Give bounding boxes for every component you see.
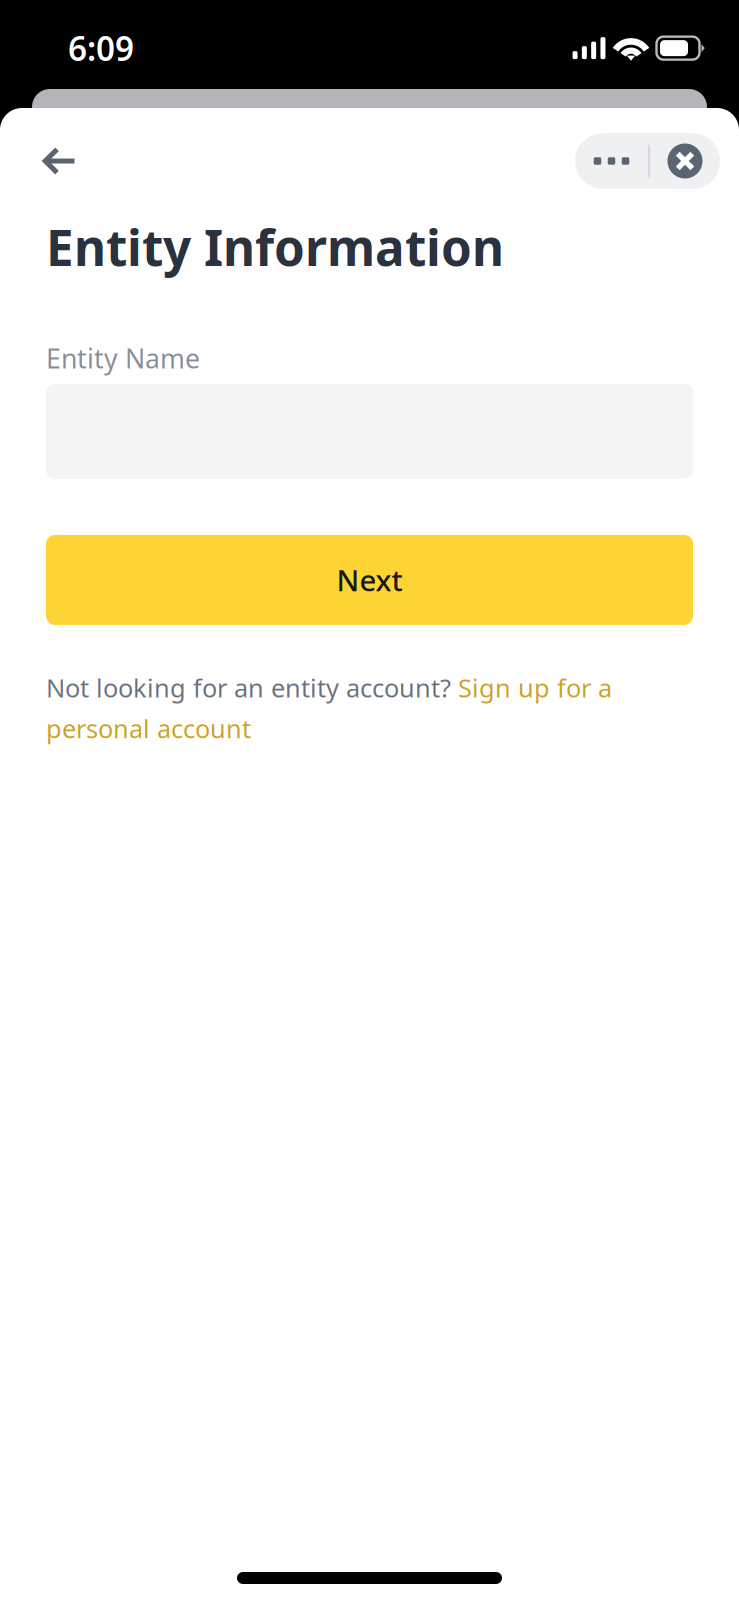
button[interactable]: Next [46, 535, 693, 625]
button[interactable]: Close [650, 133, 720, 189]
staticText: Not looking for an entity account? Sign … [46, 671, 612, 745]
button[interactable]: Back [41, 133, 97, 189]
staticText: Entity Name [46, 340, 200, 376]
button[interactable]: More [575, 133, 648, 189]
staticText: Next [336, 560, 402, 599]
staticText: 6:09 [68, 26, 134, 70]
button[interactable]: Not looking for an entity account? Sign … [46, 671, 693, 745]
staticText: Entity Information [46, 214, 504, 279]
